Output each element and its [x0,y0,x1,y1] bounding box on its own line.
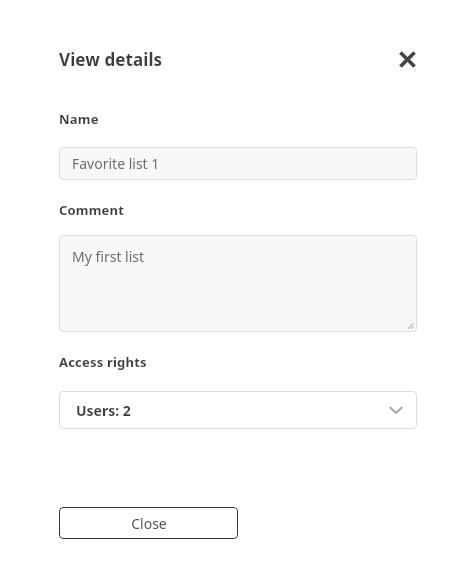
button[interactable]: Users: 2 [59,391,417,429]
button[interactable]: Favorite list 1 [59,147,417,180]
button[interactable]: Close dialog [392,44,422,74]
staticText: Users: 2 [76,401,131,420]
staticText: Close [131,514,167,533]
staticText: View details [59,48,163,71]
staticText: Comment [59,201,125,219]
staticText: Favorite list 1 [72,154,160,173]
staticText: Access rights [59,353,147,371]
staticText: My first list [72,247,145,266]
button[interactable]: Close [59,507,238,539]
button[interactable]: My first list [59,235,417,332]
staticText: Name [59,110,99,128]
